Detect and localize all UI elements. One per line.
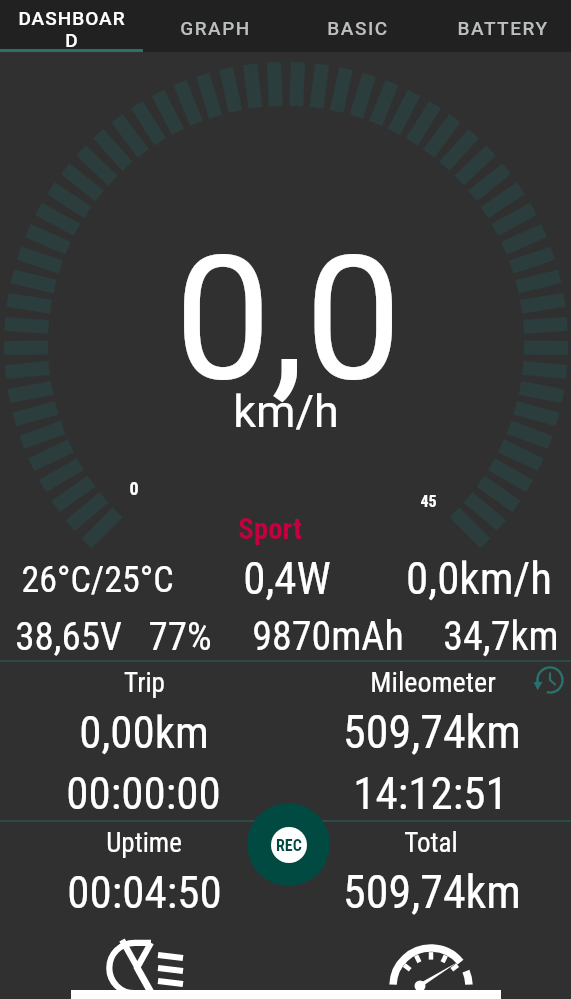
staticText: 509,74km: [343, 705, 521, 759]
staticText: 14:12:51: [353, 767, 508, 820]
button[interactable]: [143, 0, 286, 52]
staticText: 77%: [148, 614, 212, 660]
button[interactable]: Record: [247, 803, 330, 886]
staticText: REC: [276, 836, 302, 855]
button[interactable]: [0, 0, 143, 52]
staticText: 509,74km: [343, 865, 521, 919]
staticText: Total: [404, 827, 458, 859]
staticText: Uptime: [106, 827, 182, 859]
button[interactable]: Reset trip: [533, 663, 567, 697]
staticText: Mileometer: [370, 666, 496, 699]
staticText: 0: [129, 478, 139, 499]
button[interactable]: Speedometer: [388, 940, 476, 996]
button[interactable]: [286, 0, 429, 52]
staticText: BASIC: [327, 17, 389, 39]
staticText: 0,00km: [79, 706, 209, 759]
staticText: DASHBOARD: [18, 7, 126, 51]
staticText: 0,0km/h: [406, 552, 552, 605]
staticText: 45: [420, 492, 437, 511]
staticText: 00:04:50: [67, 866, 222, 919]
staticText: 38,65V: [15, 614, 122, 660]
staticText: km/h: [233, 385, 339, 438]
staticText: 9870mAh: [252, 613, 404, 660]
staticText: 34,7km: [443, 613, 559, 660]
staticText: BATTERY: [457, 17, 549, 39]
staticText: Sport: [238, 512, 302, 546]
button[interactable]: [428, 0, 571, 52]
staticText: 0,0: [174, 218, 402, 420]
staticText: 00:00:00: [66, 767, 221, 820]
staticText: GRAPH: [180, 17, 251, 39]
staticText: Trip: [124, 667, 165, 699]
staticText: 26°C/25°C: [21, 559, 174, 601]
button[interactable]: Headlight off: [104, 936, 186, 999]
staticText: 0,4W: [243, 552, 331, 605]
